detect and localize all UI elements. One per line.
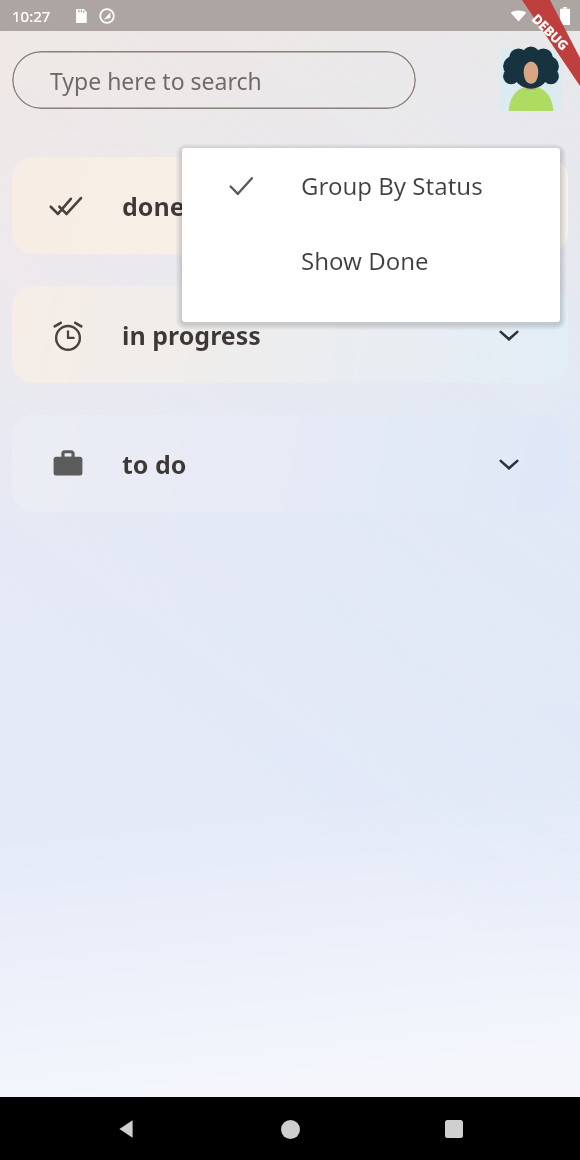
staticText: Show Done [301,244,429,277]
button[interactable]: Home [268,1107,312,1151]
staticText: done [122,189,185,223]
button[interactable]: in progress [12,286,568,383]
button[interactable]: Back [104,1107,148,1151]
button[interactable]: to do [12,415,568,512]
staticText: DEBUG [528,10,573,54]
staticText: 10:27 [12,6,51,26]
button[interactable]: Profile [500,49,562,111]
staticText: Type here to search [50,65,262,96]
staticText: to do [122,447,187,481]
button[interactable]: Group By Status [182,148,560,223]
button[interactable]: Recent apps [432,1107,476,1151]
button[interactable]: Type here to search [12,51,416,109]
staticText: in progress [122,318,261,352]
button[interactable]: Show Done [182,223,560,298]
button[interactable]: done [12,157,568,254]
staticText: Group By Status [301,169,483,202]
